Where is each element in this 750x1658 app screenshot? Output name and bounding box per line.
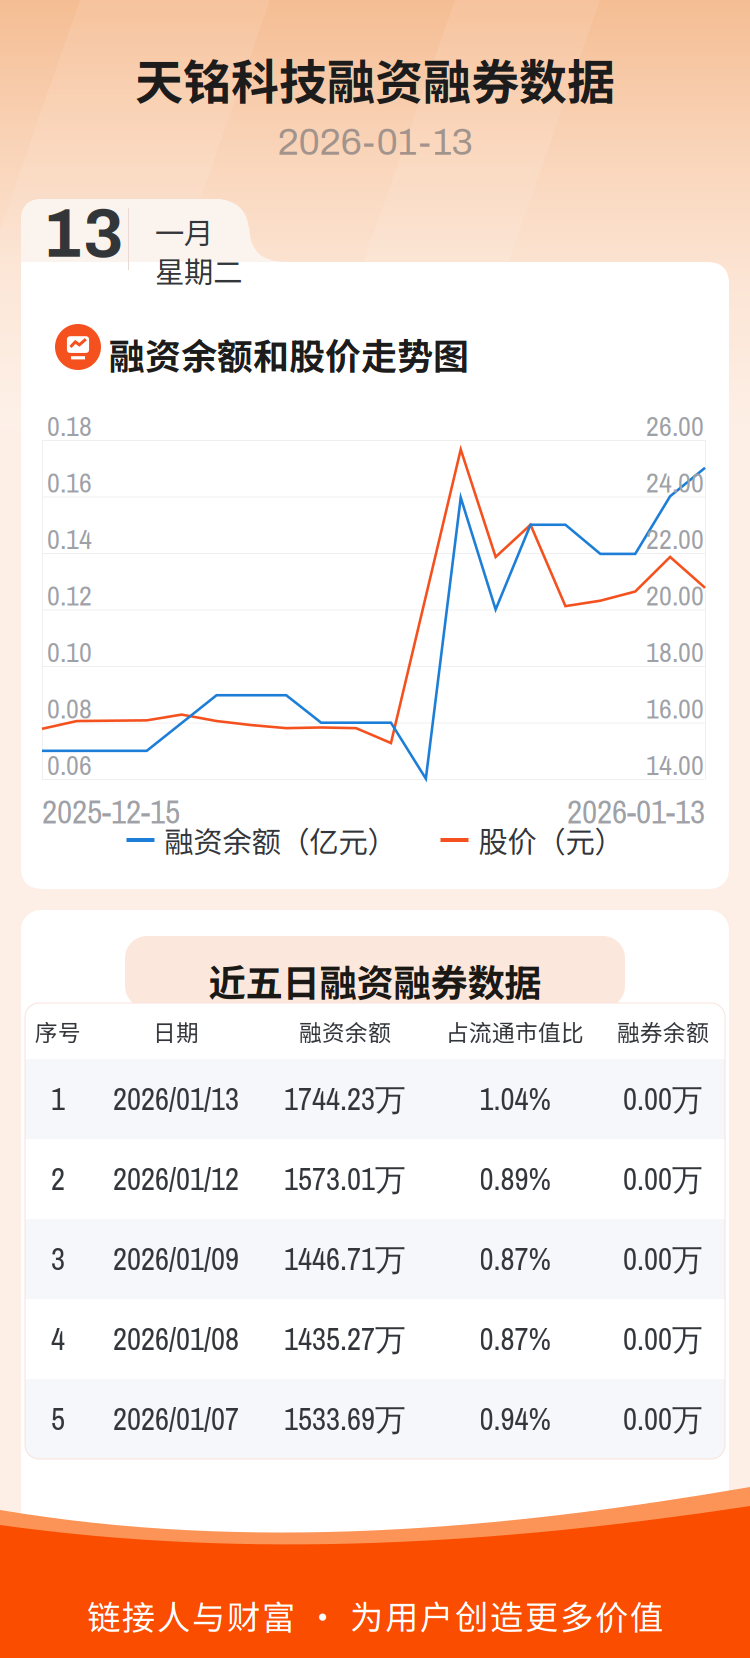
staticText: 14.00 [646,746,704,784]
staticText: 2026/01/13 [113,1078,239,1120]
staticText: 2025-12-15 [42,789,180,834]
staticText: 18.00 [646,633,704,671]
staticText: 融资余额和股价走势图 [109,328,469,380]
staticText: 近五日融资融券数据 [208,954,541,1007]
staticText: 0.10 [47,633,92,671]
staticText: 天铭科技融资融券数据 [135,44,615,113]
staticText: 2026-01-13 [567,789,705,834]
staticText: 链接人与财富 · 为用户创造更多价值 [87,1591,663,1639]
staticText: 占流通市值比 [446,1015,584,1047]
staticText: 股价（元） [478,819,623,861]
staticText: 0.94% [479,1398,550,1440]
staticText: 0.87% [479,1238,550,1280]
staticText: 0.87% [479,1318,550,1360]
staticText: 0.89% [479,1158,550,1200]
staticText: 融资余额（亿元） [164,819,396,861]
staticText: 日期 [153,1015,199,1047]
staticText: 0.00万 [623,1398,703,1440]
staticText: 0.14 [47,520,92,558]
staticText: 1533.69万 [284,1398,406,1440]
staticText: 0.00万 [623,1238,703,1280]
staticText: 2026/01/07 [113,1398,239,1440]
staticText: 22.00 [646,520,704,558]
staticText: 1446.71万 [284,1238,406,1280]
staticText: 1 [51,1078,65,1120]
staticText: 融资余额 [299,1015,391,1047]
staticText: 1435.27万 [284,1318,406,1360]
staticText: 0.08 [47,689,92,727]
staticText: 0.12 [47,576,92,614]
staticText: 1.04% [479,1078,550,1120]
staticText: 融券余额 [617,1015,709,1047]
staticText: 24.00 [646,463,704,501]
staticText: 20.00 [646,576,704,614]
staticText: 2026/01/12 [113,1158,239,1200]
staticText: 2026/01/09 [113,1238,239,1280]
staticText: 2026-01-13 [277,122,472,163]
staticText: 4 [51,1318,65,1360]
staticText: 0.00万 [623,1078,703,1120]
staticText: 星期二 [155,249,242,291]
staticText: 3 [51,1238,65,1280]
staticText: 26.00 [646,407,704,445]
staticText: 13 [42,197,124,271]
staticText: 0.00万 [623,1158,703,1200]
staticText: 1744.23万 [284,1078,406,1120]
staticText: 0.06 [47,746,92,784]
staticText: 序号 [35,1015,81,1047]
staticText: 0.00万 [623,1318,703,1360]
staticText: 2 [51,1158,65,1200]
staticText: 0.18 [47,407,92,445]
staticText: 0.16 [47,463,92,501]
staticText: 5 [51,1398,65,1440]
staticText: 2026/01/08 [113,1318,239,1360]
staticText: 一月 [155,210,213,252]
staticText: 16.00 [646,689,704,727]
staticText: 1573.01万 [284,1158,406,1200]
